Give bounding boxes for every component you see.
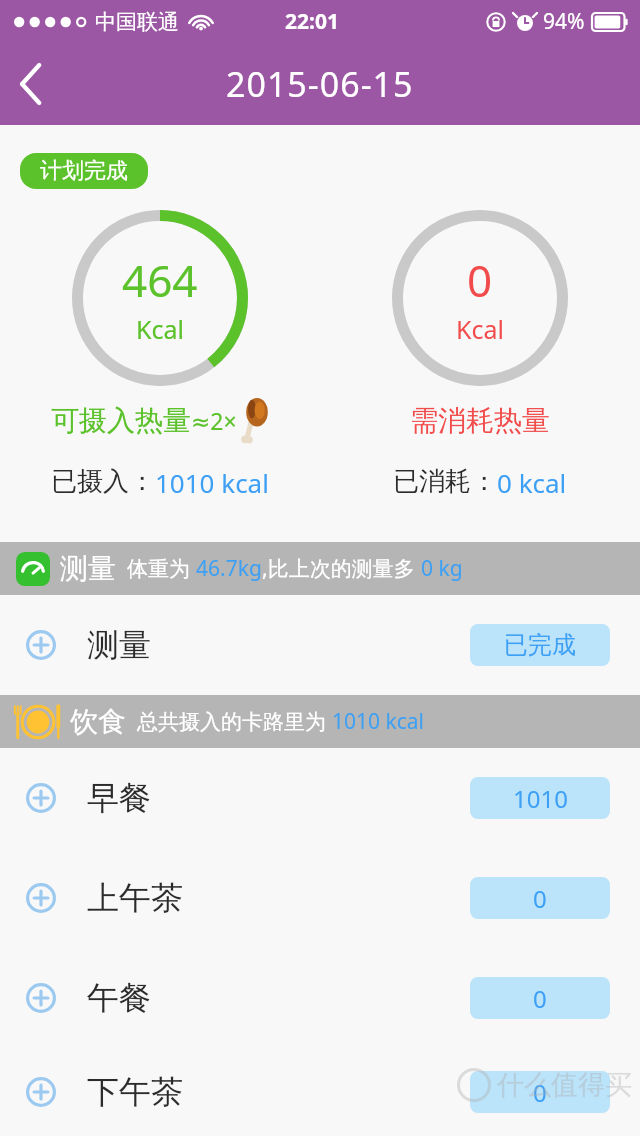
staticText: 1010 kcal <box>332 707 425 736</box>
staticText: 94% <box>543 7 585 36</box>
staticText: 可摄入热量 <box>51 403 191 438</box>
staticText: 中国联通 <box>95 9 179 35</box>
staticText: 需消耗热量 <box>410 403 550 438</box>
staticText: 午餐 <box>87 978 151 1018</box>
staticText: 总共摄入的卡路里为 <box>137 707 332 736</box>
staticText: 2015-06-15 <box>226 61 414 107</box>
button[interactable]: Back <box>0 52 64 116</box>
staticText: 0 <box>533 882 547 915</box>
button[interactable]: 0 <box>470 877 610 919</box>
button[interactable]: 测量 <box>0 542 640 595</box>
staticText: 464 <box>122 250 198 310</box>
staticText: 饮食 <box>70 704 126 739</box>
staticText: 上午茶 <box>87 878 183 918</box>
staticText: ≈2× <box>191 405 237 436</box>
button[interactable]: 0 <box>470 1071 610 1113</box>
button[interactable]: 1010 <box>470 777 610 819</box>
staticText: 46.7kg <box>196 554 262 583</box>
staticText: 0 <box>467 250 493 310</box>
staticText: 已摄入： <box>51 465 155 498</box>
staticText: 什么值得买 <box>497 1068 632 1102</box>
staticText: 1010 <box>513 782 568 815</box>
staticText: 已消耗： <box>393 465 497 498</box>
staticText: Kcal <box>136 312 184 346</box>
button[interactable]: 午餐 <box>0 948 640 1048</box>
staticText: 0 kcal <box>497 465 567 500</box>
button[interactable]: 0 <box>470 977 610 1019</box>
staticText: 早餐 <box>87 778 151 818</box>
staticText: ,比上次的测量多 <box>262 554 421 583</box>
button[interactable]: 上午茶 <box>0 848 640 948</box>
staticText: 1010 kcal <box>155 465 269 500</box>
button[interactable]: 下午茶 <box>0 1048 640 1136</box>
staticText: 已完成 <box>504 630 576 660</box>
staticText: 测量 <box>87 625 151 665</box>
staticText: 0 <box>533 982 547 1015</box>
staticText: Kcal <box>456 312 504 346</box>
staticText: 测量 <box>60 551 116 586</box>
button[interactable]: 测量 <box>0 595 640 695</box>
button[interactable]: 早餐 <box>0 748 640 848</box>
staticText: 0 kg <box>421 554 463 583</box>
button[interactable]: 计划完成 <box>20 153 148 189</box>
staticText: 下午茶 <box>87 1072 183 1112</box>
staticText: 体重为 <box>127 554 196 583</box>
staticText: 22:01 <box>285 7 339 36</box>
button[interactable]: 已完成 <box>470 624 610 666</box>
staticText: 计划完成 <box>40 157 128 185</box>
button[interactable]: 饮食 <box>0 695 640 748</box>
staticText: 0 <box>533 1076 547 1109</box>
